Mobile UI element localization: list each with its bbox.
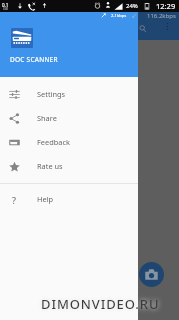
staticText: GB — [3, 6, 8, 11]
staticText: Help — [37, 194, 54, 204]
staticText: 2.1kbps — [111, 13, 127, 19]
staticText: 116.2kbps — [147, 12, 176, 19]
staticText: DOC SCANNER — [10, 55, 58, 64]
staticText: Rate us — [37, 161, 63, 171]
staticText: 0.1 — [2, 2, 9, 8]
button[interactable]: Camera — [139, 262, 164, 287]
staticText: ? — [12, 194, 17, 205]
button[interactable]: Rate us — [0, 154, 138, 178]
staticText: Share — [37, 113, 57, 123]
staticText: Settings — [37, 89, 66, 99]
staticText: Feedback — [37, 137, 70, 147]
button[interactable]: Feedback — [0, 130, 138, 154]
staticText: DIMONVIDEO.RU — [41, 295, 160, 313]
button[interactable]: More options — [157, 16, 177, 36]
staticText: 12:29 — [156, 1, 176, 11]
button[interactable]: Settings — [0, 82, 138, 106]
button[interactable]: ? — [0, 187, 138, 211]
button[interactable]: Share — [0, 106, 138, 130]
button[interactable]: Search — [133, 19, 153, 39]
staticText: 24% — [126, 2, 138, 10]
